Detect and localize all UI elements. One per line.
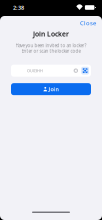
button[interactable]: Join: [11, 83, 91, 95]
staticText: Join: [48, 85, 58, 93]
button[interactable]: Close: [74, 17, 102, 29]
staticText: Enter or scan the locker code: [21, 48, 80, 54]
staticText: Close: [80, 19, 96, 27]
staticText: OU03HH: [27, 68, 43, 73]
button[interactable]: Clear text: [72, 67, 79, 74]
staticText: 2:38: [13, 4, 24, 11]
button[interactable]: Scan QR code: [81, 67, 89, 75]
staticText: Have you been invited to an locker?: [15, 42, 86, 48]
staticText: Join Locker: [33, 29, 69, 39]
